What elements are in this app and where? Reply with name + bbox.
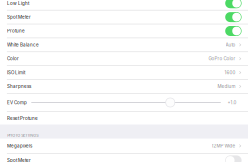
- button[interactable]: Spot Meter: [0, 10, 248, 24]
- staticText: Reset Protune: [7, 115, 38, 121]
- button[interactable]: Reset Protune: [0, 112, 248, 125]
- staticText: EV Comp: [7, 100, 27, 105]
- staticText: ISO Limit: [7, 70, 25, 75]
- button[interactable]: Sharpness: [0, 80, 248, 93]
- staticText: Spot Meter: [7, 158, 31, 162]
- staticText: Medium: [218, 84, 236, 89]
- button[interactable]: Megapixels: [0, 139, 248, 153]
- staticText: Low Light: [7, 0, 29, 6]
- staticText: Protune: [7, 28, 25, 34]
- button[interactable]: Protune: [0, 24, 248, 38]
- button[interactable]: Low Light: [0, 0, 248, 10]
- staticText: Color: [7, 56, 19, 61]
- staticText: +1.0: [227, 100, 236, 105]
- staticText: 12MP Wide: [212, 143, 236, 149]
- button[interactable]: Spot Meter: [0, 154, 248, 162]
- button[interactable]: ISO Limit: [0, 66, 248, 79]
- button[interactable]: White Balance: [0, 38, 248, 51]
- staticText: Spot Meter: [7, 14, 31, 20]
- staticText: Sharpness: [7, 84, 31, 89]
- staticText: PHOTO SETTINGS: [7, 133, 38, 138]
- staticText: White Balance: [7, 42, 39, 48]
- button[interactable]: Color: [0, 52, 248, 65]
- staticText: Megapixels: [7, 143, 32, 149]
- staticText: GoPro Color: [209, 56, 236, 61]
- staticText: 1600: [225, 70, 236, 75]
- staticText: Auto: [226, 42, 236, 48]
